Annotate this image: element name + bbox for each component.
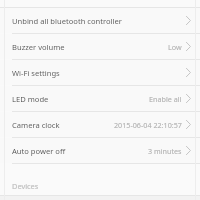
staticText: Wi-Fi settings bbox=[12, 68, 60, 78]
button[interactable]: LED mode bbox=[0, 86, 200, 111]
button[interactable]: Camera clock bbox=[0, 112, 200, 137]
staticText: Low bbox=[168, 42, 182, 52]
staticText: LED mode bbox=[12, 94, 49, 104]
staticText: Unbind all bluetooth controller bbox=[12, 16, 122, 26]
button[interactable]: Auto power off bbox=[0, 138, 200, 163]
staticText: 2015-06-04 22:10:57 bbox=[114, 120, 182, 130]
staticText: 3 minutes bbox=[148, 146, 182, 156]
staticText: Devices bbox=[12, 181, 39, 191]
button[interactable]: Buzzer volume bbox=[0, 34, 200, 59]
staticText: Camera clock bbox=[12, 120, 60, 130]
staticText: Buzzer volume bbox=[12, 42, 65, 52]
button[interactable]: Wi-Fi settings bbox=[0, 60, 200, 85]
staticText: Enable all bbox=[149, 94, 182, 104]
button[interactable]: Unbind all bluetooth controller bbox=[0, 8, 200, 33]
staticText: Auto power off bbox=[12, 146, 66, 156]
